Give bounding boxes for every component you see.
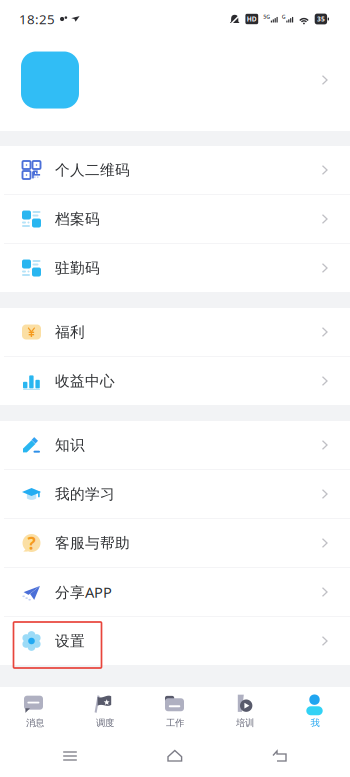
staticText: 我 <box>310 717 319 729</box>
staticText: 消息 <box>26 717 44 729</box>
staticText: 工作 <box>166 717 184 729</box>
staticText: 18:25 <box>19 10 55 28</box>
staticText: 知识 <box>55 436 85 454</box>
button[interactable]: 调度 <box>70 687 140 735</box>
button[interactable]: Recents <box>35 735 105 777</box>
staticText: 我的学习 <box>55 485 115 503</box>
staticText: G <box>282 13 286 20</box>
button[interactable] <box>0 36 350 131</box>
staticText: 档案码 <box>55 210 100 228</box>
button[interactable]: Back <box>245 735 315 777</box>
button[interactable]: 我的学习 <box>0 470 350 518</box>
staticText: 个人二维码 <box>55 161 130 179</box>
staticText: 35 <box>317 15 325 23</box>
button[interactable]: 个人二维码 <box>0 146 350 194</box>
button[interactable]: Home <box>140 735 210 777</box>
button[interactable]: 分享APP <box>0 568 350 616</box>
staticText: 培训 <box>236 717 254 729</box>
button[interactable]: 我 <box>280 687 350 735</box>
button[interactable]: 福利 <box>0 308 350 356</box>
button[interactable]: 消息 <box>0 687 70 735</box>
staticText: 福利 <box>55 323 85 341</box>
staticText: 驻勤码 <box>55 259 100 277</box>
staticText: 设置 <box>55 632 85 650</box>
button[interactable]: 设置 <box>0 617 350 665</box>
staticText: ? <box>27 531 35 554</box>
button[interactable]: 收益中心 <box>0 357 350 405</box>
staticText: 客服与帮助 <box>55 534 130 552</box>
button[interactable]: 知识 <box>0 421 350 469</box>
button[interactable]: 档案码 <box>0 195 350 243</box>
button[interactable]: 驻勤码 <box>0 244 350 292</box>
button[interactable]: 培训 <box>210 687 280 735</box>
button[interactable]: ? <box>0 519 350 567</box>
staticText: HD <box>247 15 257 23</box>
staticText: 调度 <box>96 717 114 729</box>
staticText: 分享APP <box>55 582 112 602</box>
staticText: 收益中心 <box>55 372 115 390</box>
staticText: 5G <box>263 13 270 20</box>
button[interactable]: 工作 <box>140 687 210 735</box>
